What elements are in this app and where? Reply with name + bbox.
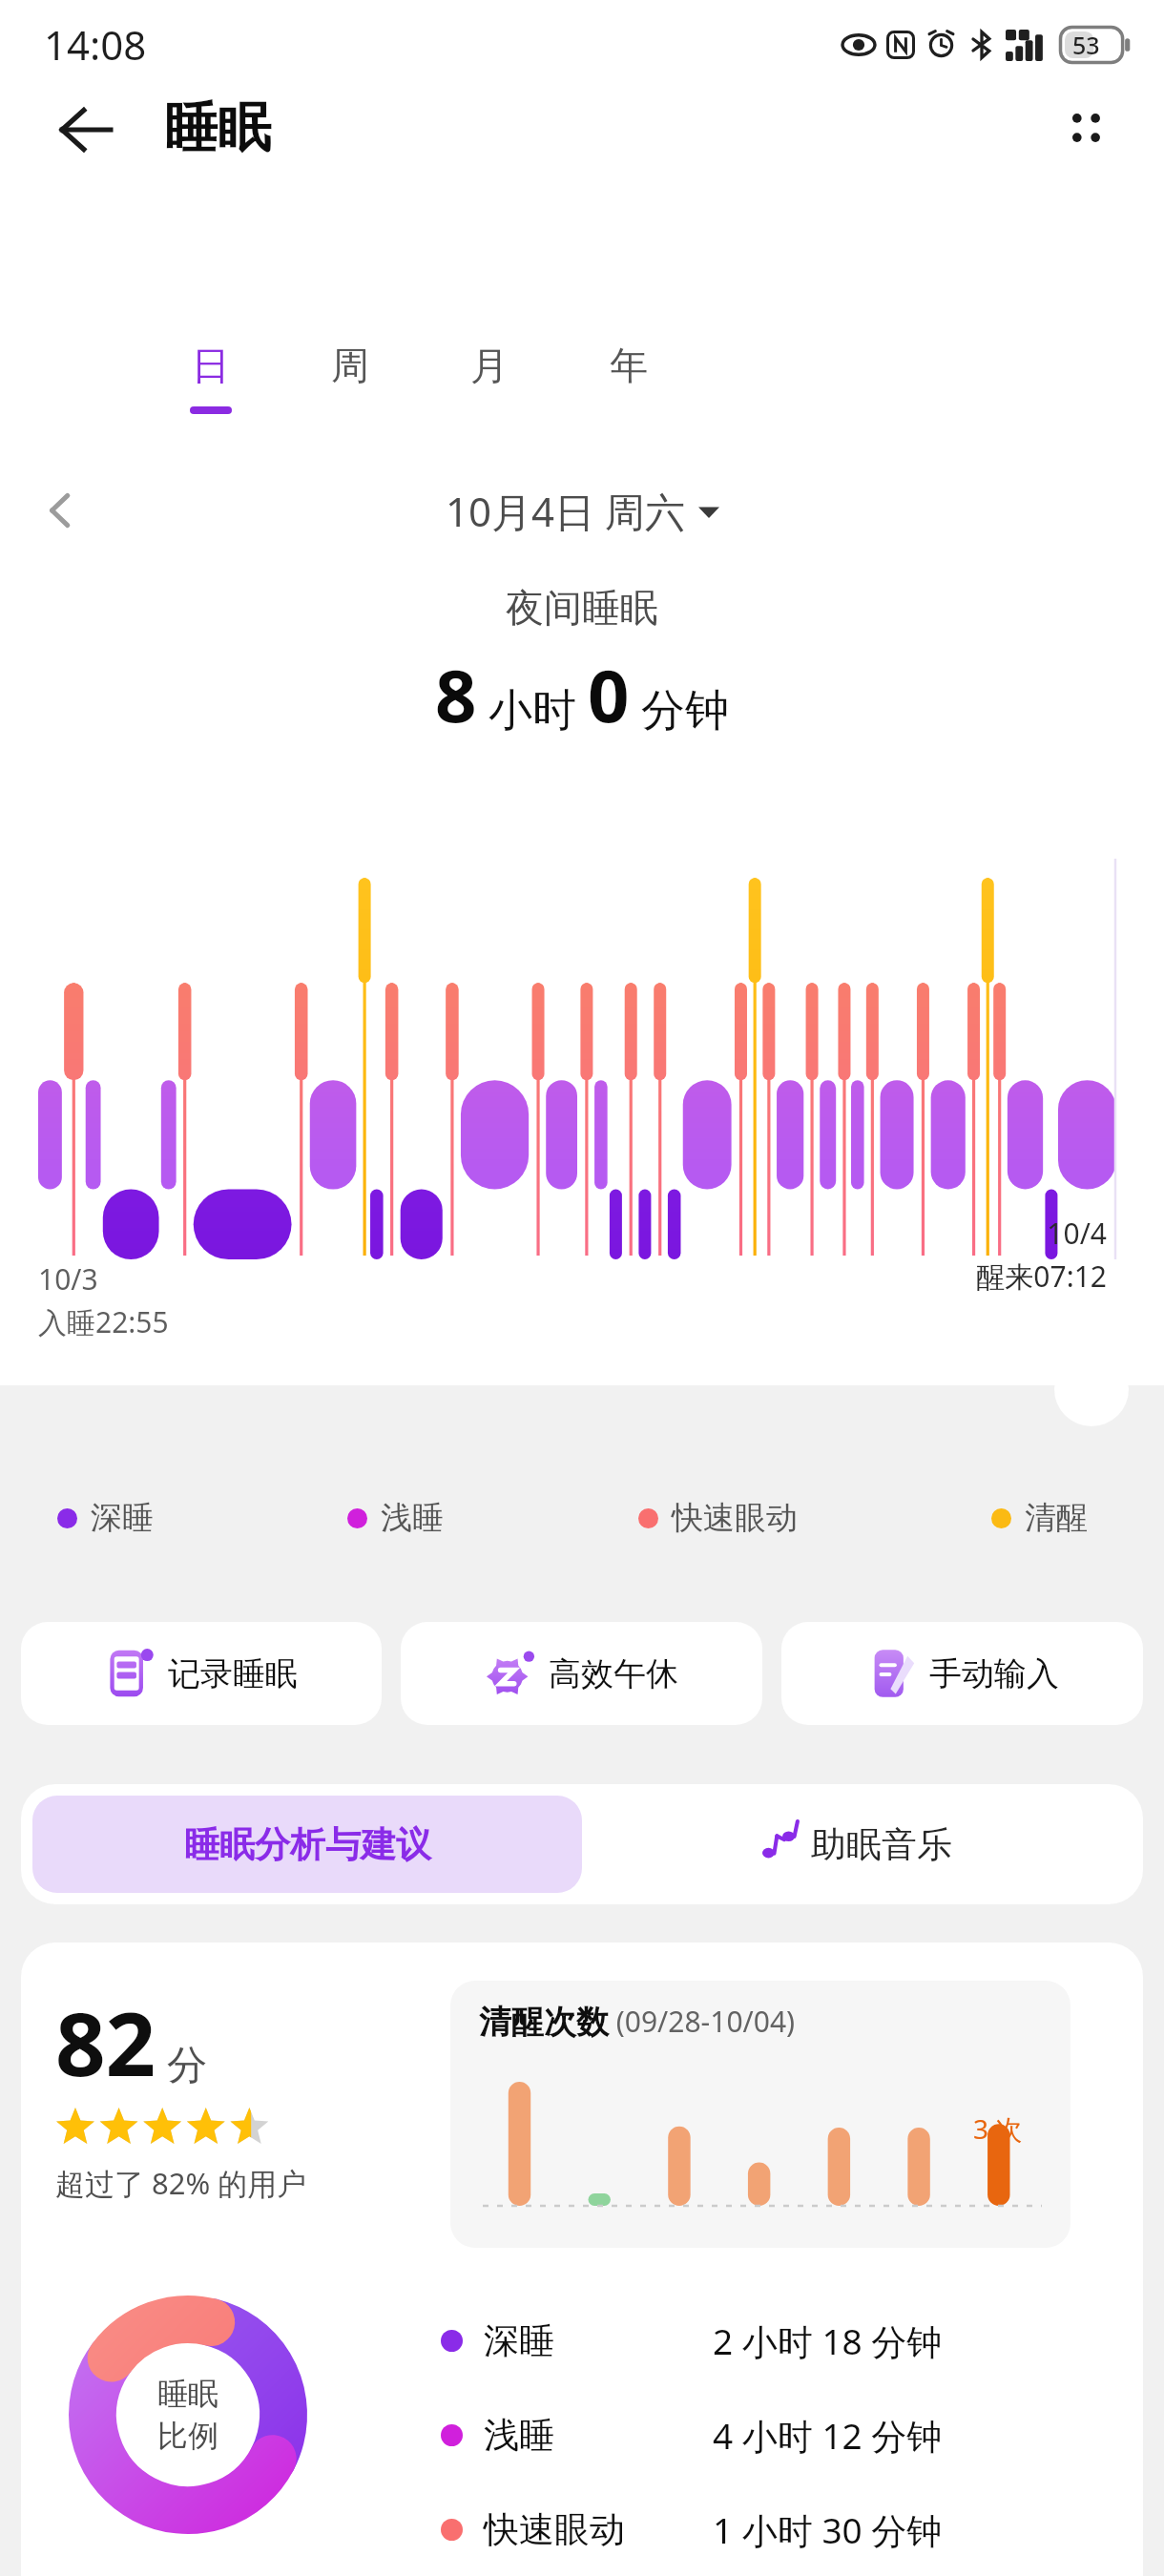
- staticText: 0: [588, 645, 630, 744]
- staticText: 记录睡眠: [168, 1653, 298, 1694]
- staticText: 深睡: [91, 1498, 154, 1538]
- staticText: 10/4 醒来07:12: [840, 1214, 1107, 1295]
- staticText: 清醒: [1025, 1498, 1088, 1538]
- staticText: 3 次: [973, 2110, 1023, 2147]
- button[interactable]: 深睡: [57, 1498, 154, 1538]
- staticText: 浅睡: [484, 2413, 713, 2458]
- staticText: 82: [55, 1983, 156, 2102]
- staticText: 53: [1072, 29, 1100, 61]
- button[interactable]: 睡眠分析与建议: [32, 1796, 582, 1893]
- button[interactable]: More options: [1044, 86, 1128, 170]
- staticText: 睡眠分析与建议: [184, 1822, 431, 1867]
- staticText: 8: [435, 645, 477, 744]
- button[interactable]: 手动输入: [781, 1622, 1143, 1725]
- staticText: 14:08: [44, 17, 147, 72]
- staticText: 分: [156, 2036, 207, 2090]
- button[interactable]: 月: [439, 342, 540, 406]
- button[interactable]: 日: [160, 342, 261, 414]
- staticText: 快速眼动: [484, 2507, 713, 2552]
- button[interactable]: 高效午休: [401, 1622, 762, 1725]
- button[interactable]: 清醒: [991, 1498, 1088, 1538]
- button[interactable]: 浅睡: [347, 1498, 444, 1538]
- staticText: 1 小时 30 分钟: [713, 2505, 943, 2554]
- button[interactable]: 快速眼动: [638, 1498, 798, 1538]
- staticText: 夜间睡眠: [506, 584, 658, 632]
- button[interactable]: 周: [300, 342, 401, 406]
- staticText: 10/3 入睡22:55: [38, 1259, 169, 1340]
- button[interactable]: 年: [578, 342, 679, 406]
- staticText: 分钟: [630, 678, 729, 738]
- staticText: (09/28-10/04): [609, 2002, 796, 2041]
- staticText: 手动输入: [929, 1653, 1059, 1694]
- button[interactable]: 浅睡: [441, 2411, 1051, 2460]
- staticText: 小时: [477, 678, 588, 738]
- staticText: 日: [192, 342, 230, 389]
- staticText: 周: [331, 342, 369, 389]
- staticText: 睡眠 比例: [157, 2375, 218, 2455]
- button[interactable]: 深睡: [441, 2316, 1051, 2365]
- staticText: 2 小时 18 分钟: [713, 2316, 943, 2365]
- staticText: 浅睡: [381, 1498, 444, 1538]
- button[interactable]: 快速眼动: [441, 2505, 1051, 2554]
- staticText: 高效午休: [549, 1653, 678, 1694]
- button[interactable]: 记录睡眠: [21, 1622, 382, 1725]
- button[interactable]: Previous day: [21, 470, 101, 551]
- button[interactable]: 清醒次数: [450, 1981, 1070, 2248]
- staticText: 睡眠: [164, 94, 271, 162]
- staticText: 超过了 82% 的用户: [55, 2163, 307, 2203]
- staticText: 助眠音乐: [811, 1822, 952, 1867]
- staticText: 10月4日 周六: [446, 484, 685, 538]
- staticText: 深睡: [484, 2318, 713, 2363]
- staticText: 月: [470, 342, 509, 389]
- button[interactable]: Expand chart: [1054, 1352, 1129, 1426]
- staticText: 4 小时 12 分钟: [713, 2411, 943, 2460]
- button[interactable]: 10月4日 周六: [446, 484, 719, 538]
- staticText: 年: [610, 342, 648, 389]
- button[interactable]: 助眠音乐: [582, 1796, 1132, 1893]
- staticText: 清醒次数: [479, 2002, 609, 2043]
- button[interactable]: Back: [44, 88, 128, 172]
- staticText: 快速眼动: [672, 1498, 798, 1538]
